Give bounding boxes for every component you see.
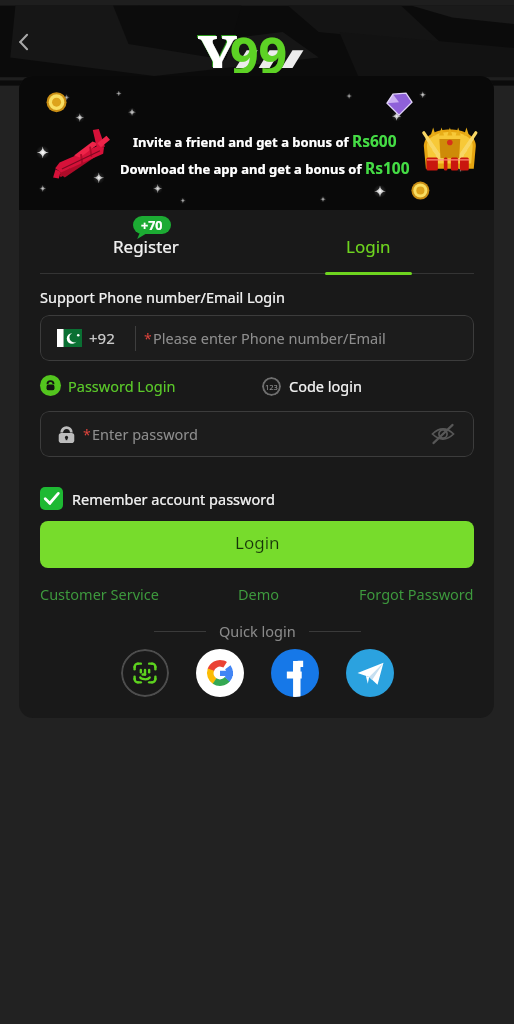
staticText: +92 (89, 328, 115, 348)
button[interactable]: Remember account password (40, 487, 275, 510)
button[interactable]: * (40, 411, 474, 457)
button[interactable]: Password Login (40, 375, 176, 396)
staticText: +70 (141, 217, 163, 234)
button[interactable]: Forgot Password (359, 584, 474, 604)
staticText: Remember account password (72, 489, 275, 509)
button[interactable]: Show password (424, 415, 462, 453)
staticText: Enter password (92, 424, 198, 444)
button[interactable]: Customer Service (40, 584, 159, 604)
button[interactable]: 123 (262, 376, 362, 396)
button[interactable]: Back (2, 20, 46, 64)
staticText: 999 (230, 21, 309, 73)
staticText: Please enter Phone number/Email (153, 328, 386, 348)
staticText: * (83, 425, 91, 444)
button[interactable]: Sign in with Telegram (346, 649, 394, 697)
staticText: Login (235, 531, 280, 554)
staticText: Login (346, 235, 391, 258)
button[interactable]: Sign in with Facebook (271, 649, 319, 697)
button[interactable]: Login (40, 521, 474, 568)
staticText: 123 (265, 382, 278, 392)
staticText: Y (197, 15, 236, 67)
staticText: Support Phone number/Email Login (40, 287, 285, 307)
staticText: Rs600 (352, 130, 397, 151)
staticText: Y (198, 16, 237, 68)
button[interactable]: +92 (40, 315, 474, 361)
button[interactable]: Register (40, 210, 252, 276)
button[interactable]: Face ID login (121, 649, 169, 697)
staticText: Invite a friend and get a bonus of (133, 133, 352, 151)
staticText: Password Login (68, 376, 176, 396)
staticText: Rs100 (365, 157, 410, 178)
staticText: Download the app and get a bonus of (120, 160, 365, 178)
staticText: Quick login (219, 621, 296, 641)
button[interactable]: Login (262, 210, 474, 276)
staticText: * (144, 329, 152, 348)
staticText: Register (113, 235, 179, 258)
staticText: Code login (289, 376, 362, 396)
button[interactable]: Demo (238, 584, 280, 604)
button[interactable]: Sign in with Google (196, 649, 244, 697)
